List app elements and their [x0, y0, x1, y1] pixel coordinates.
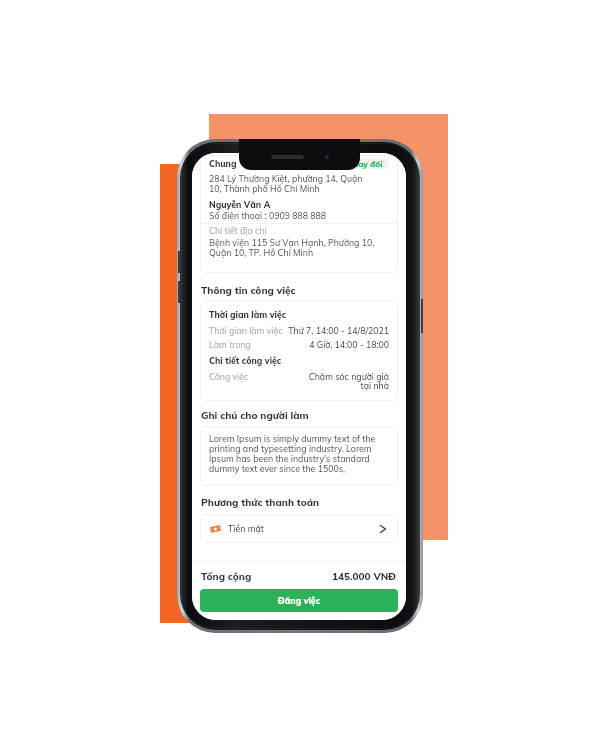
- button[interactable]: Thay đổi: [342, 158, 389, 169]
- staticText: Phương thức thanh toán: [201, 496, 320, 509]
- staticText: Số điện thoại : 0909 888 888: [209, 210, 327, 221]
- staticText: Làm trong: [209, 339, 251, 350]
- staticText: Chung: [209, 158, 237, 169]
- button[interactable]: Đăng việc: [200, 589, 398, 612]
- staticText: 145.000 VNĐ: [332, 570, 397, 582]
- staticText: Thông tin công việc: [201, 284, 296, 297]
- staticText: Thứ 7, 14:00 - 14/8/2021: [288, 325, 389, 336]
- staticText: Nguyễn Văn A: [209, 199, 271, 210]
- staticText: 284 Lý Thường Kiệt, phường 14, Quận 10, …: [209, 173, 363, 194]
- staticText: Tiền mặt: [228, 523, 264, 534]
- staticText: 4 Giờ, 14:00 - 18:00: [309, 339, 389, 350]
- staticText: Đăng việc: [278, 595, 321, 606]
- staticText: Ghi chú cho người làm: [201, 409, 309, 422]
- button[interactable]: Tiền mặt: [200, 514, 398, 543]
- staticText: Thời gian làm việc: [209, 325, 283, 336]
- staticText: Chi tiết địa chỉ: [209, 225, 267, 236]
- staticText: Chi tiết công việc: [209, 355, 282, 366]
- staticText: Lorem Ipsum is simply dummy text of the …: [209, 433, 376, 474]
- staticText: Bệnh viện 115 Sư Vạn Hạnh, Phường 10, Qu…: [209, 237, 375, 258]
- other: Chọn phương thức thanh toán: [380, 525, 386, 533]
- staticText: Tổng cộng: [201, 570, 252, 582]
- staticText: Công việc: [209, 371, 249, 382]
- staticText: Thay đổi: [348, 159, 383, 169]
- staticText: Thời gian làm việc: [209, 309, 287, 320]
- staticText: Chăm sóc người già tại nhà: [308, 371, 389, 392]
